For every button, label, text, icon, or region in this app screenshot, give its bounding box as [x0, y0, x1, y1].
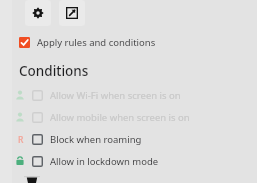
button[interactable]: Open in new window — [59, 0, 85, 26]
staticText: Conditions — [19, 62, 89, 80]
staticText: Allow mobile when screen is on — [50, 111, 190, 124]
button[interactable]: Delete — [22, 176, 42, 183]
button[interactable]: Apply rules and conditions — [0, 32, 257, 52]
button[interactable]: Allow mobile when screen is on — [0, 106, 257, 128]
staticText: Block when roaming — [50, 133, 142, 146]
staticText: R — [18, 134, 24, 145]
button[interactable]: Allow in lockdown mode — [0, 150, 257, 172]
staticText: Apply rules and conditions — [37, 36, 156, 49]
button[interactable]: R — [0, 128, 257, 150]
staticText: Allow Wi-Fi when screen is on — [50, 89, 181, 102]
button[interactable]: Settings — [25, 0, 51, 26]
button[interactable]: Allow Wi-Fi when screen is on — [0, 84, 257, 106]
staticText: Allow in lockdown mode — [50, 155, 159, 168]
